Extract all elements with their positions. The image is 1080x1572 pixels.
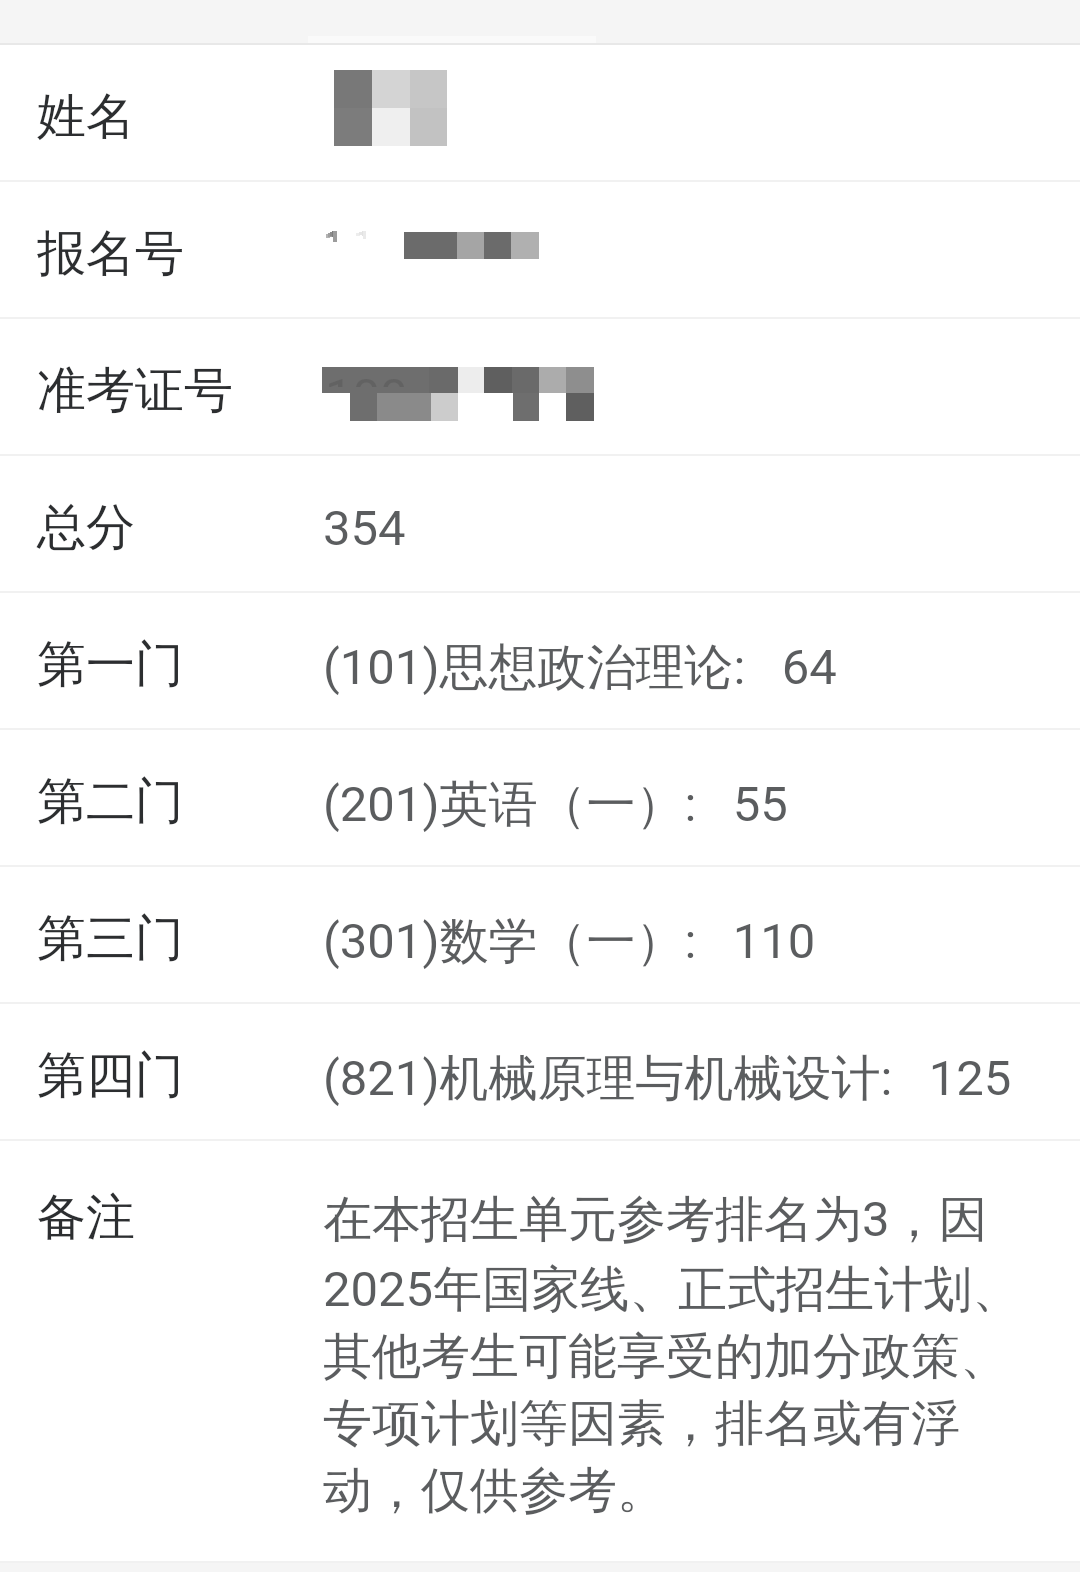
staticText: 姓名 bbox=[37, 86, 135, 148]
button[interactable]: 第三门 bbox=[0, 867, 1080, 1004]
staticText: 准考证号 bbox=[37, 360, 233, 422]
button[interactable]: 报名号 bbox=[0, 182, 1080, 319]
button[interactable]: 姓名 bbox=[0, 45, 1080, 182]
staticText: 第二门 bbox=[37, 771, 184, 833]
staticText: (301)数学（一）: 110 bbox=[323, 911, 816, 973]
button[interactable]: 准考证号 bbox=[0, 319, 1080, 456]
staticText: (201)英语（一）: 55 bbox=[323, 774, 788, 836]
staticText: 在本招生单元参考排名为3，因2025年国家线、正式招生计划、其他考生可能享受的加… bbox=[323, 1189, 1042, 1522]
staticText: 第四门 bbox=[37, 1045, 184, 1107]
staticText: 354 bbox=[323, 500, 406, 557]
button[interactable]: 第一门 bbox=[0, 593, 1080, 730]
staticText: 报名号 bbox=[37, 223, 184, 285]
button[interactable]: 第二门 bbox=[0, 730, 1080, 867]
button[interactable]: 备注 bbox=[0, 1141, 1080, 1563]
staticText: 100 bbox=[325, 368, 408, 387]
staticText: 总分 bbox=[37, 497, 135, 559]
button[interactable]: 第四门 bbox=[0, 1004, 1080, 1141]
staticText: 第一门 bbox=[37, 634, 184, 696]
button[interactable]: 总分 bbox=[0, 456, 1080, 593]
staticText: 第三门 bbox=[37, 908, 184, 970]
staticText: (821)机械原理与机械设计: 125 bbox=[323, 1048, 1012, 1110]
staticText: (101)思想政治理论: 64 bbox=[323, 637, 837, 699]
staticText: 备注 bbox=[37, 1187, 135, 1249]
